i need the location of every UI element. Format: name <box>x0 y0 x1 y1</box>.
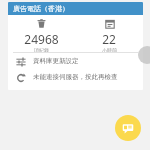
staticText: 廣告電話（香港） <box>13 4 69 13</box>
button[interactable]: 資料庫更新設定 <box>8 53 143 69</box>
staticText: 資料庫更新設定 <box>33 57 79 65</box>
button[interactable]: 未能連接伺服器，按此再檢查 <box>8 69 143 85</box>
button[interactable]: Scroll handle <box>138 46 150 64</box>
staticText: 24968 <box>24 31 59 47</box>
staticText: 未能連接伺服器，按此再檢查 <box>33 73 118 81</box>
staticText: 小時前 <box>102 47 117 52</box>
button[interactable]: 廣告電話（香港） <box>8 2 143 15</box>
button[interactable]: Messages <box>115 115 141 141</box>
staticText: 項紀錄 <box>34 47 49 52</box>
button[interactable]: 24968 <box>8 18 75 52</box>
button[interactable]: 22 <box>75 18 143 52</box>
staticText: 22 <box>102 31 116 47</box>
